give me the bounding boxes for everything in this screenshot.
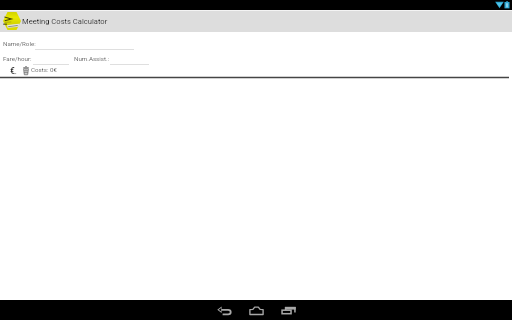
button[interactable]: Home [240,300,272,320]
button[interactable]: Delete [23,66,29,75]
staticText: Num.Assist.: [74,55,110,62]
staticText: Meeting Costs Calculator [22,17,108,26]
staticText: Name/Role: [3,40,36,47]
button[interactable]: Currency [9,66,16,75]
staticText: € [10,66,15,75]
staticText: Fare/hour: [3,55,32,62]
button[interactable]: Recent apps [272,300,304,320]
staticText: Costs: 0€ [31,66,57,73]
button[interactable]: Back [208,300,240,320]
